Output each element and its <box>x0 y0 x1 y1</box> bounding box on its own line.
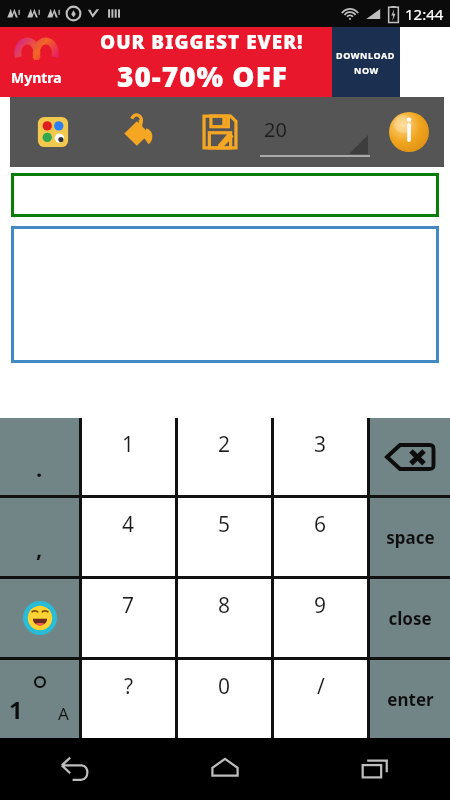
staticText: . <box>36 453 43 483</box>
button[interactable]: 0 <box>178 660 271 738</box>
button[interactable]: , <box>0 498 79 576</box>
button[interactable]: Switch to letters <box>0 660 79 738</box>
button[interactable]: Myntra <box>0 27 450 97</box>
staticText: space <box>386 526 435 549</box>
button[interactable]: Backspace <box>370 418 450 495</box>
staticText: , <box>36 533 43 563</box>
staticText: close <box>388 607 432 630</box>
button[interactable]: 8 <box>178 579 271 657</box>
staticText: 4 <box>122 510 135 539</box>
button[interactable]: Recent apps <box>300 738 450 800</box>
staticText: 8 <box>218 591 231 620</box>
button[interactable]: 1 <box>82 418 175 495</box>
button[interactable]: 9 <box>274 579 367 657</box>
button[interactable]: Back <box>0 738 150 800</box>
staticText: 5 <box>218 510 231 539</box>
button[interactable]: 20 <box>260 107 374 157</box>
button[interactable]: ? <box>82 660 175 738</box>
staticText: / <box>317 672 325 701</box>
staticText: Myntra <box>11 68 62 87</box>
staticText: DOWNLOAD <box>336 49 396 61</box>
button[interactable]: close <box>370 579 450 657</box>
staticText: 9 <box>314 591 327 620</box>
button[interactable]: / <box>274 660 367 738</box>
staticText: 1 <box>9 693 23 726</box>
button[interactable]: Fill colour <box>95 97 180 167</box>
staticText: 7 <box>122 591 135 620</box>
button[interactable]: Home <box>150 738 300 800</box>
button[interactable]: . <box>0 418 79 495</box>
staticText: NOW <box>354 64 379 76</box>
button[interactable]: 6 <box>274 498 367 576</box>
button[interactable]: 5 <box>178 498 271 576</box>
button[interactable]: Info <box>374 97 444 167</box>
button[interactable]: 4 <box>82 498 175 576</box>
button[interactable]: enter <box>370 660 450 738</box>
staticText: 12:44 <box>405 4 444 24</box>
staticText: enter <box>387 688 434 711</box>
staticText: 0 <box>218 672 231 701</box>
button[interactable] <box>11 173 439 217</box>
staticText: 30-70% OFF <box>117 57 288 95</box>
button[interactable]: 2 <box>178 418 271 495</box>
button[interactable]: Colour palette <box>10 97 95 167</box>
button[interactable]: Save <box>180 97 260 167</box>
staticText: OUR BIGGEST EVER! <box>100 29 304 55</box>
staticText: 6 <box>314 510 327 539</box>
staticText: 3 <box>314 430 327 459</box>
staticText: ? <box>124 672 134 701</box>
button[interactable]: space <box>370 498 450 576</box>
button[interactable]: Emoji <box>0 579 79 657</box>
button[interactable]: 3 <box>274 418 367 495</box>
staticText: 1 <box>122 430 135 459</box>
staticText: 2 <box>218 430 231 459</box>
button[interactable]: 7 <box>82 579 175 657</box>
button[interactable] <box>11 226 439 363</box>
staticText: 20 <box>264 116 287 143</box>
staticText: A <box>58 702 69 725</box>
